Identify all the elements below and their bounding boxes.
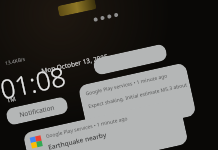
other: Google Play services bbox=[30, 135, 43, 148]
staticText: Google Play services • 1 minute ago bbox=[45, 115, 129, 140]
staticText: Notification bbox=[18, 103, 56, 119]
button[interactable] bbox=[92, 43, 168, 76]
staticText: TM bbox=[6, 95, 17, 105]
staticText: 13.4KB/s bbox=[4, 56, 26, 67]
button[interactable]: Google Play services • 1 minute ago bbox=[22, 98, 189, 150]
staticText: 01:08 bbox=[0, 58, 69, 106]
button[interactable]: Notification bbox=[5, 96, 69, 126]
staticText: Expect shaking. Initial estimate M5.3 ab… bbox=[88, 81, 188, 110]
staticText: Mon October 13, 2025 bbox=[41, 52, 109, 75]
staticText: Google Play services • 1 minute ago bbox=[85, 72, 168, 97]
button[interactable]: Google Play services • 1 minute ago bbox=[78, 62, 197, 139]
staticText: Earthquake nearby bbox=[47, 130, 108, 150]
